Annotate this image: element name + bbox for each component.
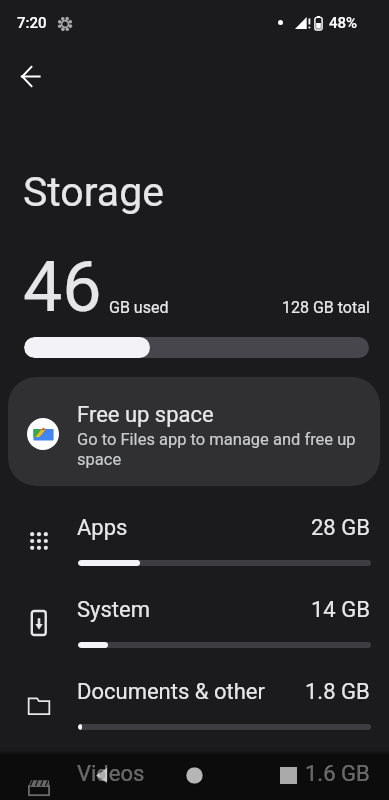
- button[interactable]: Free up space: [8, 377, 380, 486]
- staticText: System: [77, 597, 150, 623]
- staticText: 48%: [329, 14, 358, 32]
- button[interactable]: Videos: [0, 737, 389, 800]
- staticText: 46: [23, 246, 102, 328]
- button[interactable]: Recent apps: [264, 751, 312, 799]
- staticText: Documents & other: [77, 679, 265, 705]
- staticText: 14 GB: [311, 597, 370, 623]
- staticText: Storage: [23, 168, 164, 216]
- staticText: 128 GB total: [282, 298, 370, 317]
- button[interactable]: Home: [170, 751, 218, 799]
- button[interactable]: Back: [6, 52, 54, 100]
- staticText: 1.6 GB: [305, 761, 370, 787]
- button[interactable]: Apps: [0, 491, 389, 571]
- staticText: Videos: [77, 761, 145, 787]
- staticText: Apps: [77, 515, 128, 541]
- staticText: 7:20: [17, 14, 47, 32]
- staticText: Free up space: [77, 402, 214, 428]
- button[interactable]: Back: [77, 751, 125, 799]
- staticText: GB used: [109, 298, 169, 317]
- button[interactable]: Documents & other: [0, 655, 389, 735]
- staticText: 28 GB: [311, 515, 370, 541]
- staticText: Go to Files app to manage and free up sp…: [77, 430, 362, 469]
- staticText: 1.8 GB: [305, 679, 370, 705]
- button[interactable]: System: [0, 573, 389, 653]
